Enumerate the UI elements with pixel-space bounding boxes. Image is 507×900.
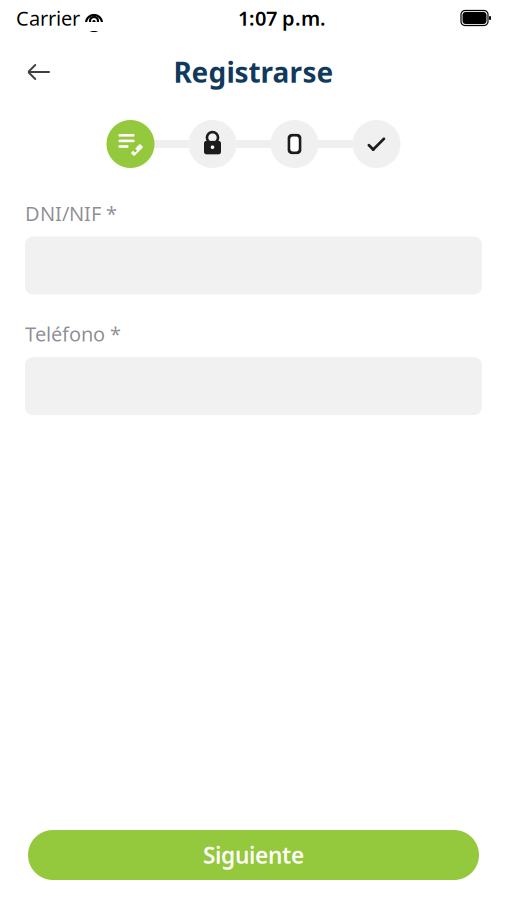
button[interactable]: Back	[16, 52, 62, 92]
staticText: DNI/NIF *	[25, 200, 117, 227]
button[interactable]: Siguiente	[28, 830, 479, 880]
staticText: Siguiente	[203, 840, 304, 870]
button[interactable]: Step 1: personal data	[106, 120, 154, 168]
button[interactable]: Step 4: confirmation	[352, 120, 400, 168]
staticText: 1:07 p.m.	[238, 5, 326, 31]
staticText: Teléfono *	[25, 321, 121, 347]
button[interactable]: Step 2: password	[188, 120, 236, 168]
staticText: Carrier	[16, 5, 80, 31]
staticText: Registrarse	[173, 53, 333, 91]
button[interactable]: Step 3: phone verification	[270, 120, 318, 168]
